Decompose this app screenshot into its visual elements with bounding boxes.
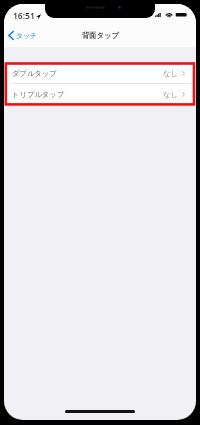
- staticText: ダブルタップ: [12, 69, 57, 78]
- staticText: タッチ: [16, 31, 38, 40]
- staticText: なし: [163, 90, 178, 99]
- staticText: トリプルタップ: [12, 90, 65, 99]
- staticText: 16:51: [13, 10, 35, 22]
- button[interactable]: トリプルタップ: [4, 84, 196, 104]
- staticText: なし: [163, 69, 178, 78]
- button[interactable]: ダブルタップ: [4, 63, 196, 83]
- button[interactable]: タッチ: [4, 28, 44, 43]
- staticText: 背面タップ: [82, 31, 119, 40]
